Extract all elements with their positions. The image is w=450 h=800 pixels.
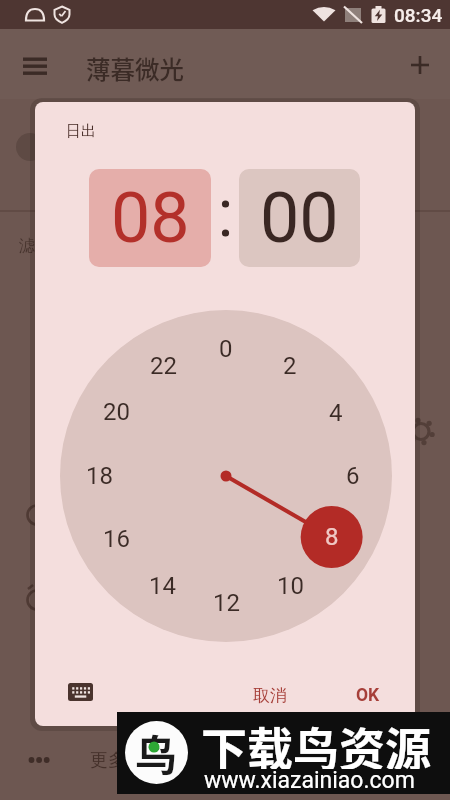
staticText: 20 [103, 398, 130, 426]
staticText: 取消 [253, 685, 287, 706]
staticText: 日出 [66, 122, 96, 141]
staticText: 12 [213, 589, 240, 617]
button[interactable] [398, 43, 442, 87]
staticText: 下载鸟资源 [201, 713, 431, 769]
button[interactable] [13, 44, 57, 88]
staticText: 4 [329, 399, 343, 427]
staticText: 08 [111, 177, 190, 259]
staticText: 08:34 [394, 4, 443, 26]
staticText: 滤 [19, 236, 35, 256]
staticText: 8 [325, 523, 339, 551]
staticText: 18 [86, 462, 113, 490]
staticText: 薄暮微光 [86, 51, 184, 83]
staticText: 2 [283, 352, 297, 380]
staticText: 22 [150, 352, 177, 380]
staticText: 更多 [90, 749, 126, 772]
staticText: 00 [260, 177, 339, 259]
staticText: 0 [219, 335, 233, 363]
button[interactable]: 08 [89, 169, 211, 267]
staticText: 16 [103, 525, 130, 553]
button[interactable]: OK [341, 676, 395, 714]
staticText: www.xiazainiao.com [204, 767, 415, 792]
button[interactable]: 00 [239, 169, 360, 267]
button[interactable] [57, 671, 103, 713]
staticText: OK [356, 685, 380, 706]
staticText: 14 [149, 572, 176, 600]
staticText: 10 [277, 572, 304, 600]
button[interactable]: 取消 [240, 676, 300, 714]
staticText: 鸟 [135, 722, 178, 783]
staticText: 6 [346, 462, 360, 490]
